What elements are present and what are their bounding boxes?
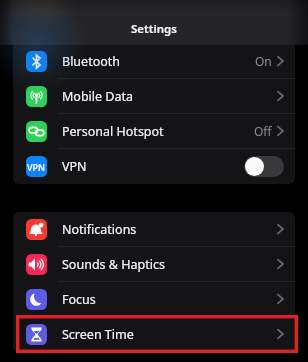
staticText: Screen Time — [62, 326, 134, 343]
staticText: On — [255, 53, 272, 69]
staticText: Settings — [131, 21, 177, 37]
button[interactable]: Mobile Data — [13, 79, 295, 113]
staticText: VPN — [62, 158, 87, 175]
staticText: Sounds & Haptics — [62, 256, 165, 273]
button[interactable]: Toggle VPN — [244, 156, 284, 177]
staticText: Bluetooth — [62, 53, 121, 70]
staticText: Mobile Data — [62, 88, 134, 105]
staticText: VPN — [27, 161, 46, 173]
button[interactable]: Sounds & Haptics — [13, 247, 295, 281]
button[interactable]: Bluetooth — [13, 44, 295, 78]
staticText: Focus — [62, 291, 96, 308]
staticText: Off — [254, 123, 272, 139]
button[interactable]: VPN — [13, 149, 295, 183]
button[interactable]: Focus — [13, 282, 295, 316]
staticText: Notifications — [62, 221, 137, 238]
button[interactable]: Personal Hotspot — [13, 114, 295, 148]
staticText: Personal Hotspot — [62, 123, 164, 140]
button[interactable]: Notifications — [13, 212, 295, 246]
button[interactable]: Screen Time — [13, 317, 295, 351]
